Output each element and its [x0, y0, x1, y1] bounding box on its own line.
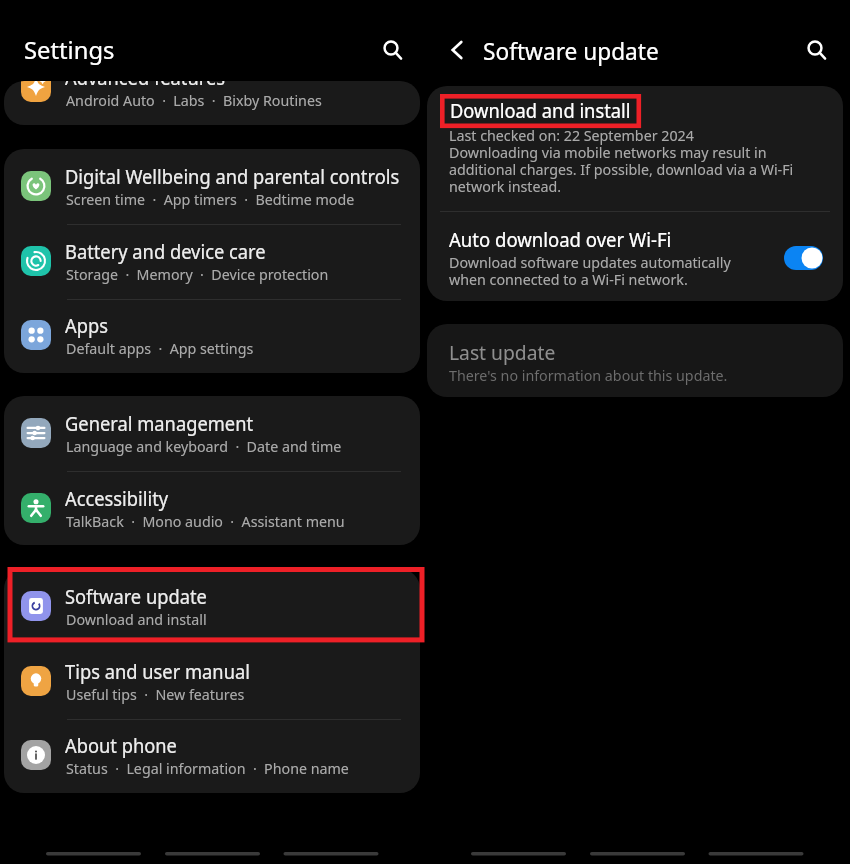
button[interactable]: Auto download over Wi-Fi toggle [784, 246, 823, 270]
button[interactable]: Last update [427, 324, 843, 397]
button[interactable]: Back [436, 29, 478, 71]
staticText: Download software updates automatically [449, 252, 731, 272]
staticText: Download and install [450, 98, 631, 124]
staticText: General management [65, 411, 254, 437]
button[interactable]: Apps [4, 298, 420, 373]
staticText: network instead. [449, 176, 561, 196]
staticText: There's no information about this update… [449, 365, 728, 385]
staticText: Software update [483, 34, 659, 67]
staticText: Android Auto · Labs · Bixby Routines [66, 90, 322, 110]
button[interactable]: General management [4, 396, 420, 471]
button[interactable]: Search [795, 28, 835, 68]
staticText: when connected to a Wi-Fi network. [449, 269, 688, 289]
staticText: Status · Legal information · Phone name [66, 758, 349, 778]
button[interactable]: Software update [4, 569, 420, 644]
staticText: Screen time · App timers · Bedtime mode [66, 189, 355, 209]
staticText: Accessibility [65, 486, 169, 512]
staticText: Apps [65, 313, 108, 339]
button[interactable]: Tips and user manual [4, 644, 420, 719]
staticText: Download and install [66, 609, 207, 629]
staticText: Last update [449, 339, 556, 366]
button[interactable]: Advanced features [4, 81, 420, 94]
staticText: Useful tips · New features [66, 684, 245, 704]
staticText: Advanced features [65, 81, 226, 91]
staticText: About phone [65, 733, 178, 759]
staticText: Downloading via mobile networks may resu… [449, 142, 767, 162]
staticText: Default apps · App settings [66, 338, 254, 358]
button[interactable]: Digital Wellbeing and parental controls [4, 149, 420, 224]
button[interactable] [427, 86, 843, 211]
staticText: Storage · Memory · Device protection [66, 264, 329, 284]
button[interactable]: About phone [4, 718, 420, 793]
button[interactable]: Search [371, 28, 411, 68]
staticText: Software update [65, 584, 207, 610]
staticText: Auto download over Wi-Fi [449, 227, 672, 253]
button[interactable]: Battery and device care [4, 224, 420, 299]
staticText: additional charges. If possible, downloa… [449, 159, 794, 179]
button[interactable] [427, 211, 843, 301]
staticText: Settings [24, 33, 115, 66]
staticText: Last checked on: 22 September 2024 [449, 125, 694, 145]
staticText: Digital Wellbeing and parental controls [65, 164, 400, 190]
staticText: Battery and device care [65, 239, 266, 265]
staticText: Language and keyboard · Date and time [66, 436, 341, 456]
button[interactable]: Accessibility [4, 471, 420, 545]
staticText: Tips and user manual [65, 659, 251, 685]
staticText: TalkBack · Mono audio · Assistant menu [66, 511, 345, 531]
